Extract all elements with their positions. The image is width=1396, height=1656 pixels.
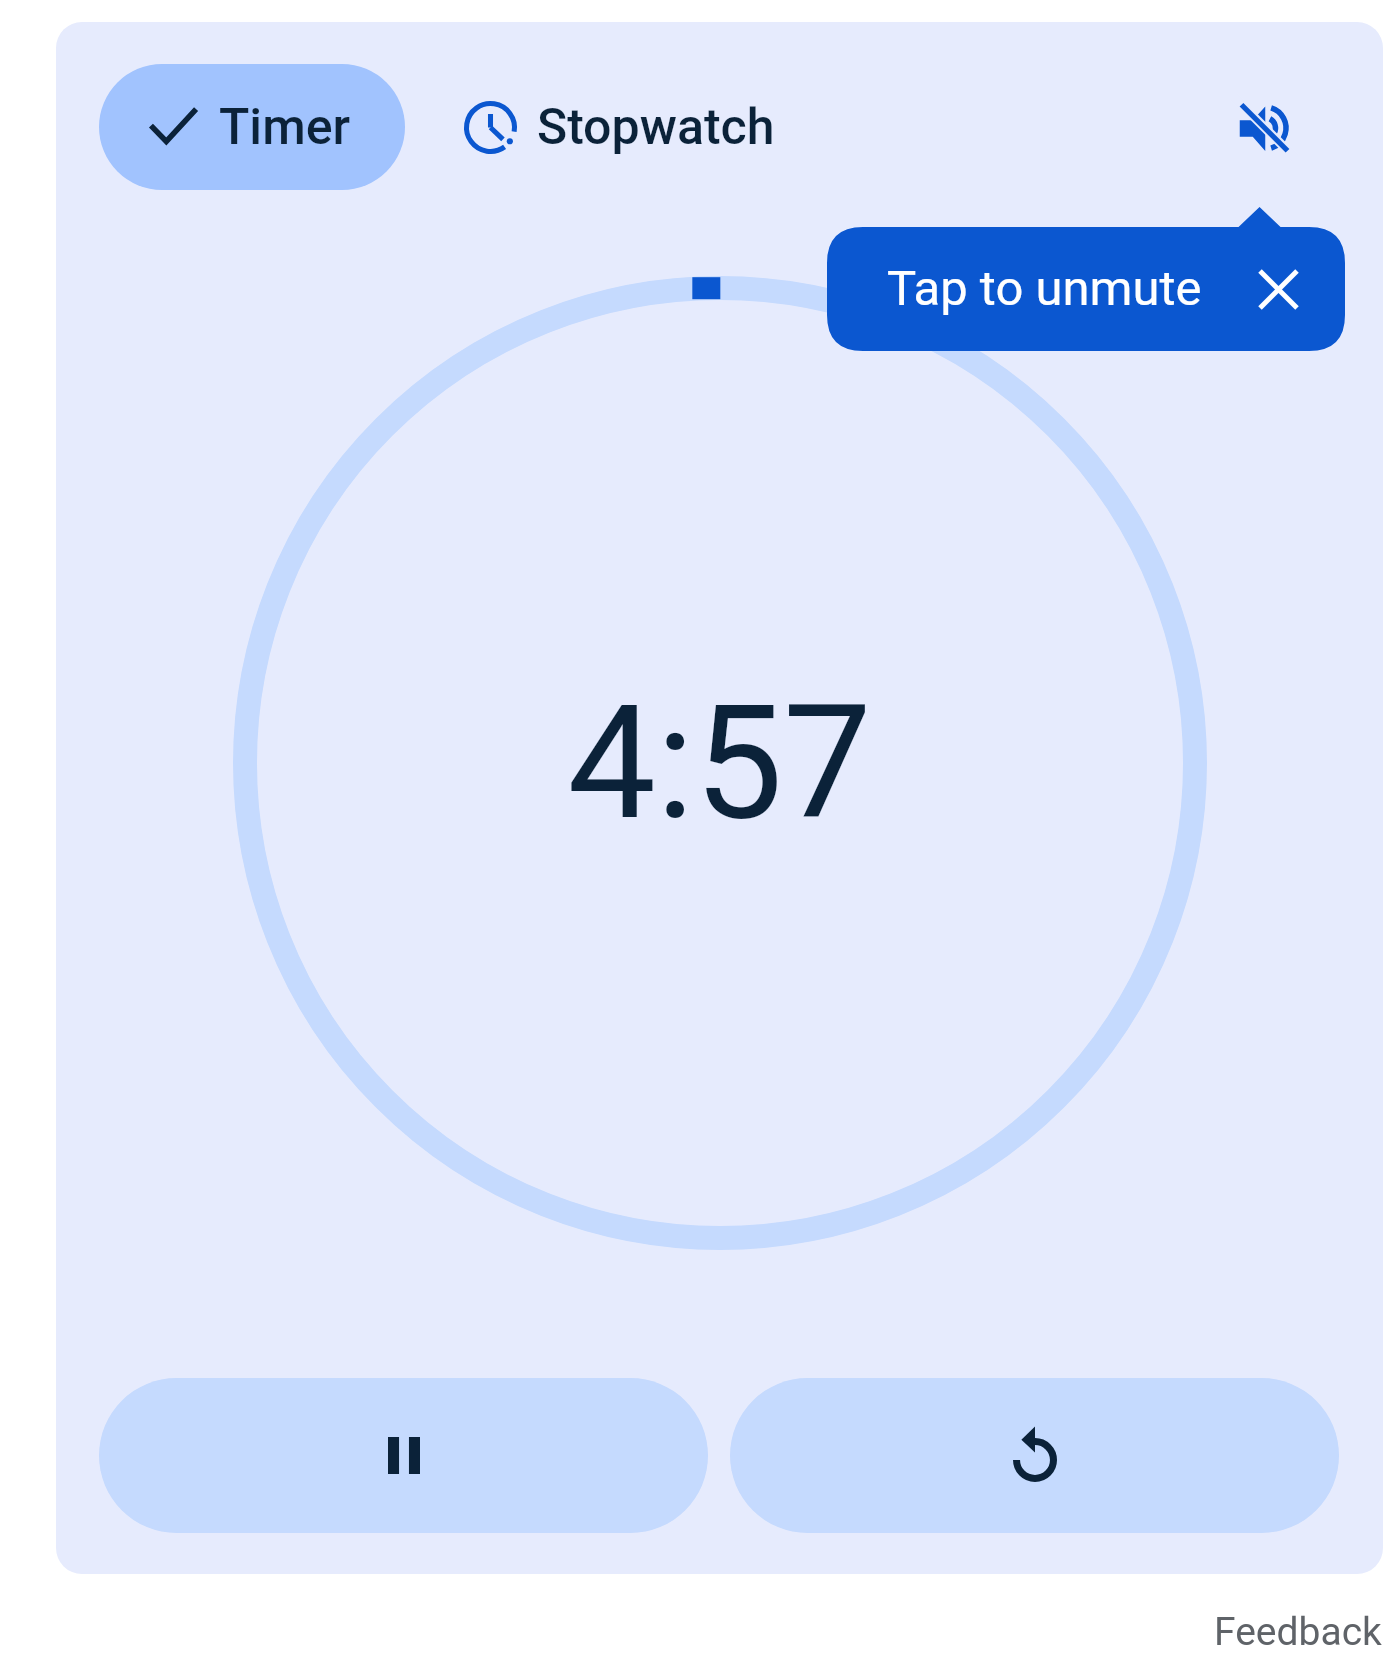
button[interactable]: Stopwatch <box>464 64 775 190</box>
staticText: Feedback <box>1214 1609 1382 1655</box>
button[interactable]: Tap to unmute <box>827 226 1345 351</box>
staticText: Tap to unmute <box>887 260 1202 317</box>
staticText: 4:57 <box>567 670 872 855</box>
button[interactable]: Timer <box>99 64 405 190</box>
button[interactable]: Feedback <box>1196 1595 1396 1656</box>
button[interactable]: Unmute <box>1214 78 1314 178</box>
staticText: Stopwatch <box>537 98 775 157</box>
button[interactable]: Dismiss <box>1247 258 1309 320</box>
button[interactable]: Reset <box>730 1378 1339 1533</box>
staticText: Timer <box>219 98 351 157</box>
button[interactable]: Pause <box>99 1378 708 1533</box>
